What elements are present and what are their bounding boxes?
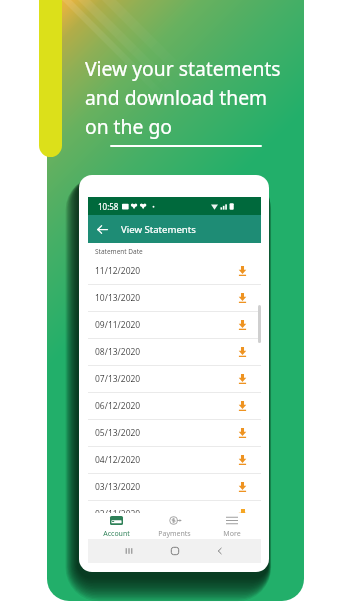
other: Download xyxy=(238,482,247,492)
other: Download xyxy=(238,428,247,438)
other: Download xyxy=(238,293,247,303)
button[interactable]: Payments xyxy=(145,513,203,539)
staticText: 06/12/2020 xyxy=(95,400,141,412)
staticText: 04/12/2020 xyxy=(95,454,141,466)
other: Download xyxy=(238,374,247,384)
button[interactable]: Account xyxy=(88,513,145,539)
staticText: 08/13/2020 xyxy=(95,346,141,358)
button[interactable]: 08/13/2020 xyxy=(88,339,261,365)
staticText: Account xyxy=(103,529,130,539)
other: Download xyxy=(238,347,247,357)
other: Download xyxy=(238,401,247,411)
button[interactable]: 11/12/2020 xyxy=(88,258,261,284)
staticText: 10/13/2020 xyxy=(95,292,141,304)
staticText: 03/13/2020 xyxy=(95,481,141,493)
staticText: Statement Date xyxy=(95,247,143,256)
other: Home xyxy=(170,546,180,556)
button[interactable]: 09/11/2020 xyxy=(88,312,261,338)
staticText: 02/11/2020 xyxy=(95,508,141,513)
button[interactable]: Back xyxy=(94,221,110,237)
button[interactable]: 04/12/2020 xyxy=(88,447,261,473)
other: Download xyxy=(238,320,247,330)
button[interactable]: 10/13/2020 xyxy=(88,285,261,311)
button[interactable]: More xyxy=(203,513,261,539)
staticText: View Statements xyxy=(121,223,196,236)
staticText: View your statements and download them o… xyxy=(85,55,281,139)
other: Download xyxy=(238,455,247,465)
staticText: Payments xyxy=(158,529,191,539)
staticText: 09/11/2020 xyxy=(95,319,141,331)
button[interactable]: 07/13/2020 xyxy=(88,366,261,392)
staticText: More xyxy=(223,529,241,539)
other: Back xyxy=(215,546,225,556)
other: Download xyxy=(238,509,247,513)
button[interactable]: 02/11/2020 xyxy=(88,501,261,513)
button[interactable]: 03/13/2020 xyxy=(88,474,261,500)
button[interactable]: 05/13/2020 xyxy=(88,420,261,446)
other: Download xyxy=(238,266,247,276)
staticText: 07/13/2020 xyxy=(95,373,141,385)
other: Recents xyxy=(124,546,134,556)
staticText: 11/12/2020 xyxy=(95,265,141,277)
staticText: 10:58 xyxy=(98,201,119,212)
button[interactable]: 06/12/2020 xyxy=(88,393,261,419)
staticText: 05/13/2020 xyxy=(95,427,141,439)
